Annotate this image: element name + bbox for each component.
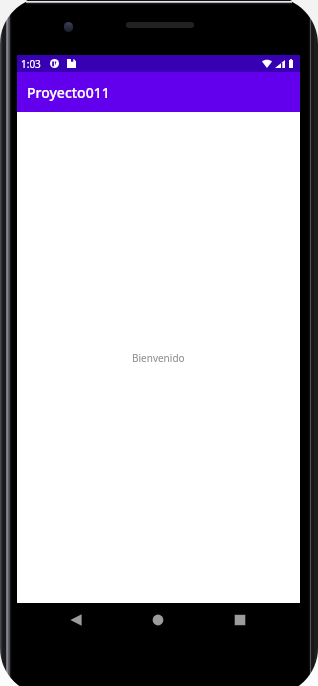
button[interactable]: Home [142,604,174,636]
staticText: 1:03 [21,57,41,71]
button[interactable]: Back [60,604,92,636]
staticText: Proyecto011 [27,83,110,102]
button[interactable]: Recents [224,604,256,636]
staticText: Bienvenido [132,351,185,365]
button[interactable]: Proyecto011 [17,72,300,112]
